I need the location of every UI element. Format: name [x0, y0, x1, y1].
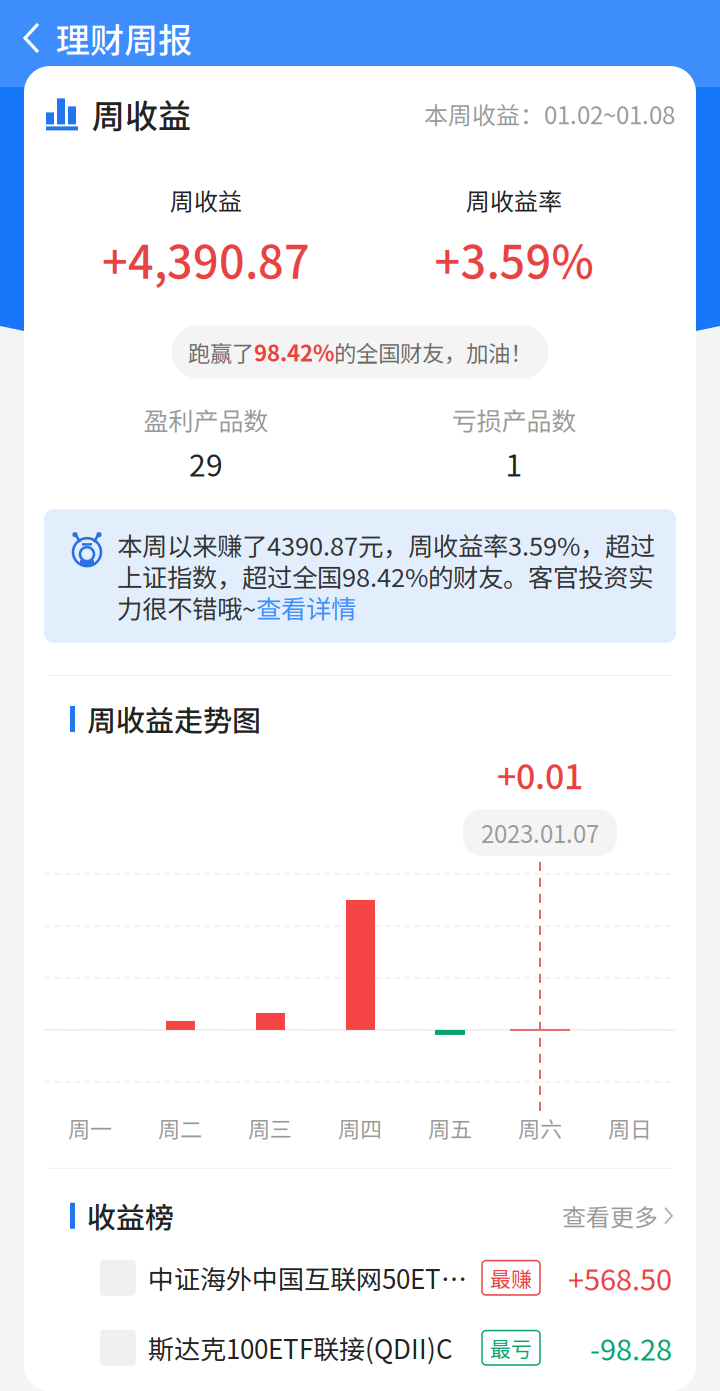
button[interactable]: 斯达克100ETF联接(QDII)C: [24, 1313, 696, 1383]
staticText: 周日: [608, 1112, 652, 1144]
staticText: 29: [189, 442, 223, 485]
staticText: 亏损产品数: [451, 401, 576, 438]
staticText: 盈利产品数: [143, 401, 268, 438]
button[interactable]: 中证海外中国互联网50ETF联接...: [24, 1243, 696, 1313]
staticText: +3.59%: [434, 226, 593, 292]
staticText: +568.50: [568, 1257, 672, 1299]
staticText: 斯达克100ETF联接(QDII)C: [148, 1329, 453, 1367]
staticText: 2023.01.07: [481, 815, 599, 850]
staticText: 理财周报: [56, 13, 192, 63]
staticText: 本周以来赚了4390.87元，周收益率3.59%，超过上证指数，超过全国98.4…: [117, 529, 655, 623]
staticText: 中证海外中国互联网50ETF联接...: [148, 1259, 476, 1297]
staticText: 周收益率: [466, 183, 562, 218]
button[interactable]: Back: [0, 3, 56, 73]
staticText: 1: [505, 442, 522, 485]
staticText: 跑赢了98.42%的全国财友，加油！: [188, 336, 532, 368]
button[interactable]: 查看更多: [562, 1198, 674, 1233]
staticText: 周收益走势图: [87, 698, 261, 740]
staticText: 收益榜: [87, 1195, 174, 1237]
staticText: 最赚: [490, 1263, 532, 1293]
staticText: 周五: [428, 1112, 472, 1144]
staticText: +0.01: [497, 750, 583, 799]
staticText: 本周收益：01.02~01.08: [424, 96, 675, 131]
staticText: -98.28: [590, 1327, 672, 1369]
staticText: 周三: [248, 1112, 292, 1144]
staticText: 周收益: [92, 90, 191, 138]
staticText: 周四: [338, 1112, 382, 1144]
staticText: 周收益: [170, 183, 242, 218]
staticText: 周六: [518, 1112, 562, 1144]
staticText: 最亏: [490, 1333, 532, 1363]
staticText: 查看更多: [562, 1198, 658, 1233]
staticText: 周二: [158, 1112, 202, 1144]
staticText: 周一: [68, 1112, 112, 1144]
staticText: +4,390.87: [102, 226, 310, 292]
